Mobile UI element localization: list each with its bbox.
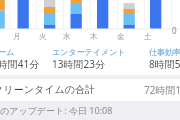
staticText: 0 [172, 25, 177, 36]
staticText: エンターテイメント [52, 47, 126, 57]
button[interactable]: ゲーム [0, 46, 82, 70]
staticText: ゲーム [0, 47, 15, 57]
staticText: 仕事効率 [149, 47, 180, 57]
staticText: のアップデート: 今日 10:08 [0, 104, 113, 116]
staticText: 13時間23分 [52, 57, 105, 71]
staticText: 木 [90, 32, 98, 41]
staticText: 土 [144, 32, 152, 41]
staticText: 8時間53分 [149, 57, 180, 71]
staticText: 2時間41分 [0, 57, 40, 71]
button[interactable]: スクリーンタイムの合計 [0, 79, 180, 101]
staticText: 72時間16分 [144, 83, 180, 97]
staticText: 金 [117, 32, 125, 41]
button[interactable]: 仕事効率 [149, 46, 180, 70]
staticText: 月 [13, 32, 21, 41]
staticText: 火 [39, 32, 47, 41]
staticText: 水 [63, 32, 71, 41]
staticText: スクリーンタイムの合計 [0, 83, 95, 96]
button[interactable]: エンターテイメント [52, 46, 144, 70]
